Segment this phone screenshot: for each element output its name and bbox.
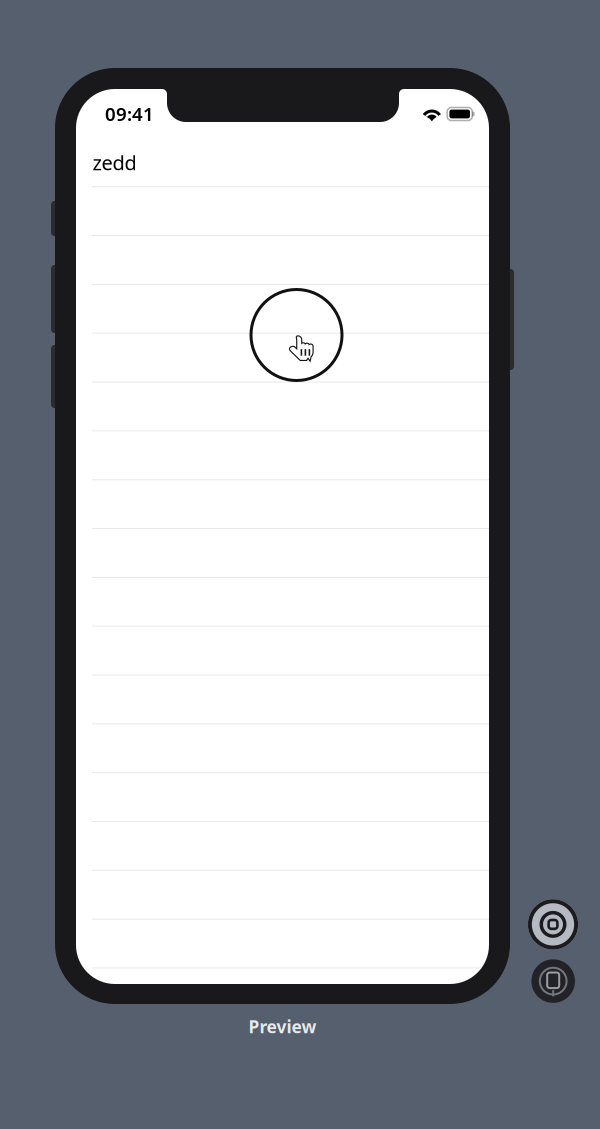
- staticText: Preview: [248, 1015, 316, 1038]
- staticText: 09:41: [105, 101, 154, 126]
- staticText: zedd: [92, 149, 136, 176]
- button[interactable]: Device Settings: [531, 959, 575, 1003]
- button[interactable]: Live Preview: [528, 900, 577, 949]
